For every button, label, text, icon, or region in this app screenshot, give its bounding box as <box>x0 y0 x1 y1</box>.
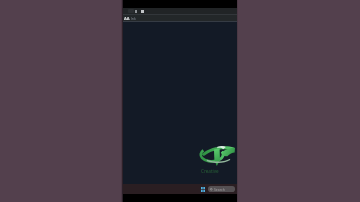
staticText: Creative <box>201 168 219 174</box>
staticText: AA <box>124 16 130 21</box>
staticText: Search <box>214 187 225 192</box>
staticText: lnk <box>131 16 136 21</box>
button[interactable]: Start <box>200 186 206 192</box>
button[interactable]: Search <box>208 186 235 192</box>
